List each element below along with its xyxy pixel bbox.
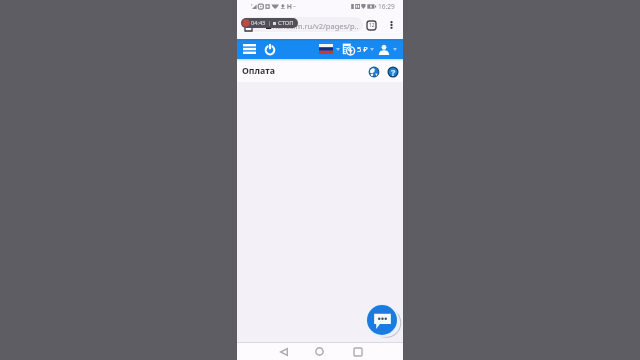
staticText: 5 ₽ [357,44,368,54]
button[interactable]: Account [378,41,397,57]
staticText: 12 [369,22,375,29]
button[interactable]: Menu [241,41,257,57]
button[interactable]: Stop recording [241,18,298,28]
button[interactable]: Language globe [368,66,380,78]
button[interactable]: Logout [262,41,278,57]
staticText: СТОП [278,19,294,27]
button[interactable]: Chat support [367,305,397,335]
staticText: onlinesim.ru/v2/pages/p.. [268,21,359,31]
button[interactable]: Language [319,42,340,56]
button[interactable]: Help [387,66,399,78]
button[interactable]: Back [275,343,292,360]
staticText: 16:29 [378,2,395,11]
button[interactable]: Recents [349,343,366,360]
button[interactable]: Tabs [365,19,378,32]
button[interactable]: Address bar [241,17,363,32]
staticText: Оплата [242,65,275,77]
button[interactable]: Home [311,343,328,360]
staticText: ? [391,66,396,78]
staticText: 04:43 [251,19,266,27]
button[interactable]: More options [385,19,397,31]
button[interactable]: Balance [342,41,374,57]
